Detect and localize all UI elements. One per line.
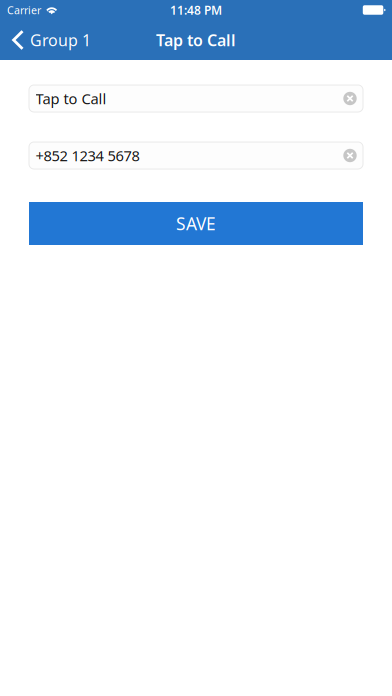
staticText: Tap to Call [156,29,236,51]
staticText: +852 1234 5678 [35,146,139,165]
button[interactable]: +852 1234 5678 [29,142,363,169]
staticText: SAVE [176,212,216,235]
button[interactable]: Clear text [337,85,363,111]
staticText: 11:48 PM [170,2,222,18]
staticText: Carrier [7,3,41,17]
button[interactable]: Tap to Call [29,85,363,112]
button[interactable]: Group 1 [0,20,99,60]
staticText: Tap to Call [35,89,106,108]
button[interactable]: SAVE [29,202,363,245]
button[interactable]: Clear text [337,142,363,168]
staticText: Group 1 [30,29,91,51]
